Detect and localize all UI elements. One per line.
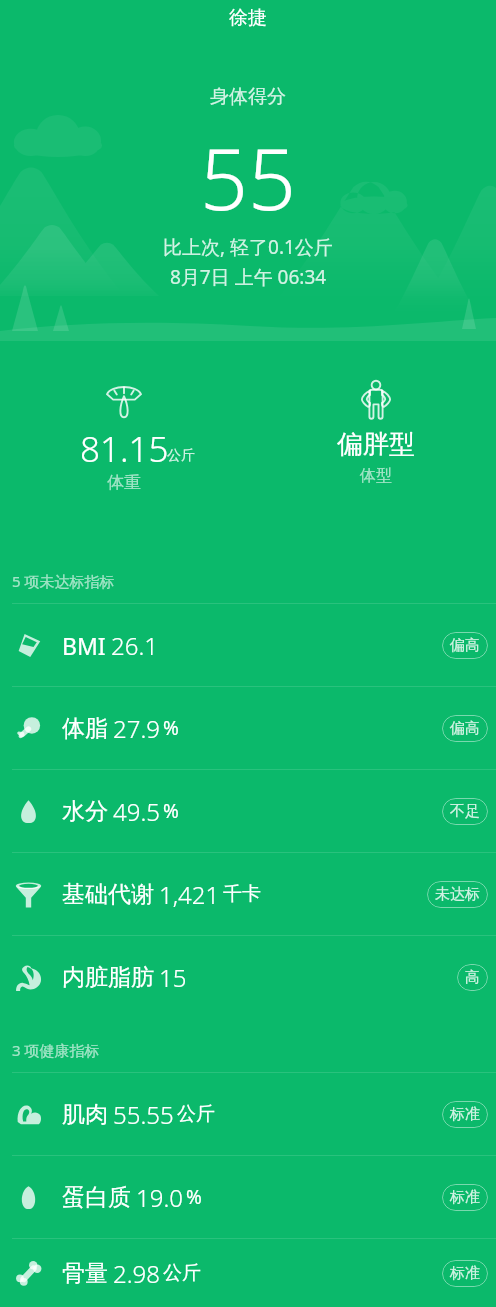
staticText: 15: [159, 961, 187, 994]
staticText: 标准: [450, 1105, 480, 1124]
staticText: 高: [465, 968, 480, 987]
staticText: 55: [200, 120, 296, 234]
button[interactable]: 骨量: [0, 1238, 496, 1307]
staticText: 内脏脂肪: [62, 963, 154, 992]
staticText: 千卡: [223, 882, 261, 906]
staticText: 49.5: [113, 795, 160, 828]
staticText: 8月7日 上午 06:34: [170, 264, 327, 290]
staticText: 体型: [360, 466, 392, 486]
button[interactable]: 基础代谢: [0, 852, 496, 935]
button[interactable]: 内脏脂肪: [0, 935, 496, 1018]
staticText: 19.0: [136, 1181, 183, 1214]
staticText: 基础代谢: [62, 880, 154, 909]
staticText: 公斤: [167, 447, 195, 465]
staticText: 骨量: [62, 1259, 108, 1288]
button[interactable]: 体重 81.15 公斤: [0, 340, 248, 552]
staticText: 不足: [450, 802, 480, 821]
staticText: 体脂: [62, 714, 108, 743]
staticText: 公斤: [177, 1102, 215, 1126]
staticText: 身体得分: [210, 85, 286, 109]
button[interactable]: 蛋白质: [0, 1155, 496, 1238]
staticText: 徐捷: [229, 6, 267, 30]
staticText: 肌肉: [62, 1100, 108, 1129]
staticText: 偏高: [450, 719, 480, 738]
staticText: 1,421: [159, 878, 220, 911]
staticText: %: [163, 715, 179, 741]
button[interactable]: 水分: [0, 769, 496, 852]
staticText: 水分: [62, 797, 108, 826]
staticText: 标准: [450, 1264, 480, 1283]
staticText: 偏胖型: [337, 428, 415, 461]
staticText: 比上次, 轻了0.1公斤: [163, 234, 333, 260]
staticText: 81.15: [80, 425, 169, 473]
button[interactable]: 体脂: [0, 686, 496, 769]
staticText: 偏高: [450, 636, 480, 655]
button[interactable]: 体型 偏胖型: [248, 340, 496, 552]
staticText: %: [163, 798, 179, 824]
staticText: 未达标: [435, 885, 480, 904]
staticText: 27.9: [113, 712, 160, 745]
staticText: 2.98: [113, 1257, 160, 1290]
staticText: 体重: [107, 472, 141, 493]
button[interactable]: BMI: [0, 603, 496, 686]
staticText: 蛋白质: [62, 1183, 131, 1212]
button[interactable]: 肌肉: [0, 1072, 496, 1155]
staticText: 5 项未达标指标: [12, 571, 115, 591]
staticText: 26.1: [111, 629, 158, 662]
staticText: 3 项健康指标: [12, 1040, 100, 1060]
staticText: %: [186, 1184, 202, 1210]
staticText: 55.55: [113, 1098, 174, 1131]
staticText: BMI: [62, 630, 106, 661]
staticText: 公斤: [163, 1261, 201, 1285]
staticText: 标准: [450, 1188, 480, 1207]
